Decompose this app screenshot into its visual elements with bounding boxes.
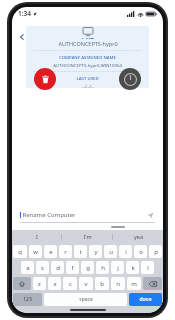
button[interactable]: s [36, 261, 49, 274]
button[interactable]: Delete [34, 68, 56, 90]
button[interactable]: q [13, 245, 27, 258]
button[interactable]: h [96, 261, 109, 274]
staticText: e [49, 248, 53, 256]
staticText: a [26, 264, 30, 272]
staticText: n [116, 280, 120, 288]
button[interactable]: i [119, 245, 132, 258]
staticText: z [38, 280, 41, 288]
staticText: r [64, 248, 67, 256]
button[interactable]: b [95, 277, 109, 290]
button[interactable]: done [129, 293, 162, 306]
button[interactable]: k [126, 261, 139, 274]
staticText: COMPANY ASSIGNED NAME [59, 54, 116, 60]
button[interactable]: Back [15, 30, 29, 44]
staticText: q [18, 248, 22, 256]
staticText: AUTHCONCEPTS-hypr0-WIN10X64 [53, 62, 122, 68]
staticText: --/--/-- [82, 83, 94, 88]
staticText: g [86, 264, 90, 272]
staticText: 1:34 [18, 9, 31, 18]
button[interactable]: a [21, 261, 34, 274]
button[interactable]: r [59, 245, 72, 258]
staticText: j [117, 264, 119, 272]
staticText: LAST USED [76, 75, 99, 81]
staticText: i [125, 248, 127, 256]
button[interactable]: v [79, 277, 93, 290]
button[interactable]: c [63, 277, 77, 290]
button[interactable]: 123 [13, 293, 42, 306]
button[interactable]: yea [113, 230, 163, 243]
button[interactable]: o [134, 245, 147, 258]
staticText: s [41, 264, 44, 272]
button[interactable]: Backspace [143, 277, 162, 290]
button[interactable]: m [127, 277, 141, 290]
staticText: x [53, 280, 57, 288]
button[interactable]: space [44, 293, 127, 306]
staticText: m [131, 280, 137, 288]
staticText: t [79, 248, 82, 256]
staticText: k [131, 264, 135, 272]
staticText: Rename Computer [22, 211, 76, 219]
button[interactable]: Shift [13, 277, 31, 290]
button[interactable]: f [66, 261, 79, 274]
button[interactable]: d [51, 261, 64, 274]
button[interactable]: e [44, 245, 57, 258]
staticText: d [56, 264, 60, 272]
staticText: l [147, 264, 149, 272]
button[interactable]: y [89, 245, 102, 258]
button[interactable]: n [111, 277, 125, 290]
staticText: b [100, 280, 104, 288]
button[interactable]: Send [146, 211, 155, 220]
button[interactable]: t [74, 245, 87, 258]
staticText: hYPR [80, 36, 96, 39]
staticText: I [36, 233, 38, 240]
button[interactable]: w [29, 245, 42, 258]
staticText: space [79, 296, 93, 303]
staticText: f [71, 264, 74, 272]
staticText: y [94, 248, 98, 256]
staticText: h [101, 264, 105, 272]
staticText: yea [134, 233, 143, 240]
staticText: p [154, 248, 158, 256]
button[interactable]: Rename Computer [20, 208, 155, 222]
button[interactable]: u [104, 245, 117, 258]
staticText: u [109, 248, 113, 256]
button[interactable]: z [33, 277, 46, 290]
staticText: 123 [23, 296, 32, 303]
staticText: I'm [83, 233, 92, 240]
staticText: done [139, 296, 152, 303]
staticText: w [33, 248, 38, 256]
button[interactable]: l [141, 261, 154, 274]
button[interactable]: p [149, 245, 162, 258]
staticText: v [84, 280, 88, 288]
button[interactable]: Power [119, 68, 141, 90]
staticText: o [139, 248, 143, 256]
button[interactable]: x [48, 277, 61, 290]
button[interactable]: g [81, 261, 94, 274]
button[interactable]: I'm [62, 230, 112, 243]
button[interactable]: j [111, 261, 124, 274]
staticText: c [69, 280, 72, 288]
button[interactable]: I [12, 230, 61, 243]
staticText: AUTHCONCEPTS-hypr0 [58, 40, 118, 47]
